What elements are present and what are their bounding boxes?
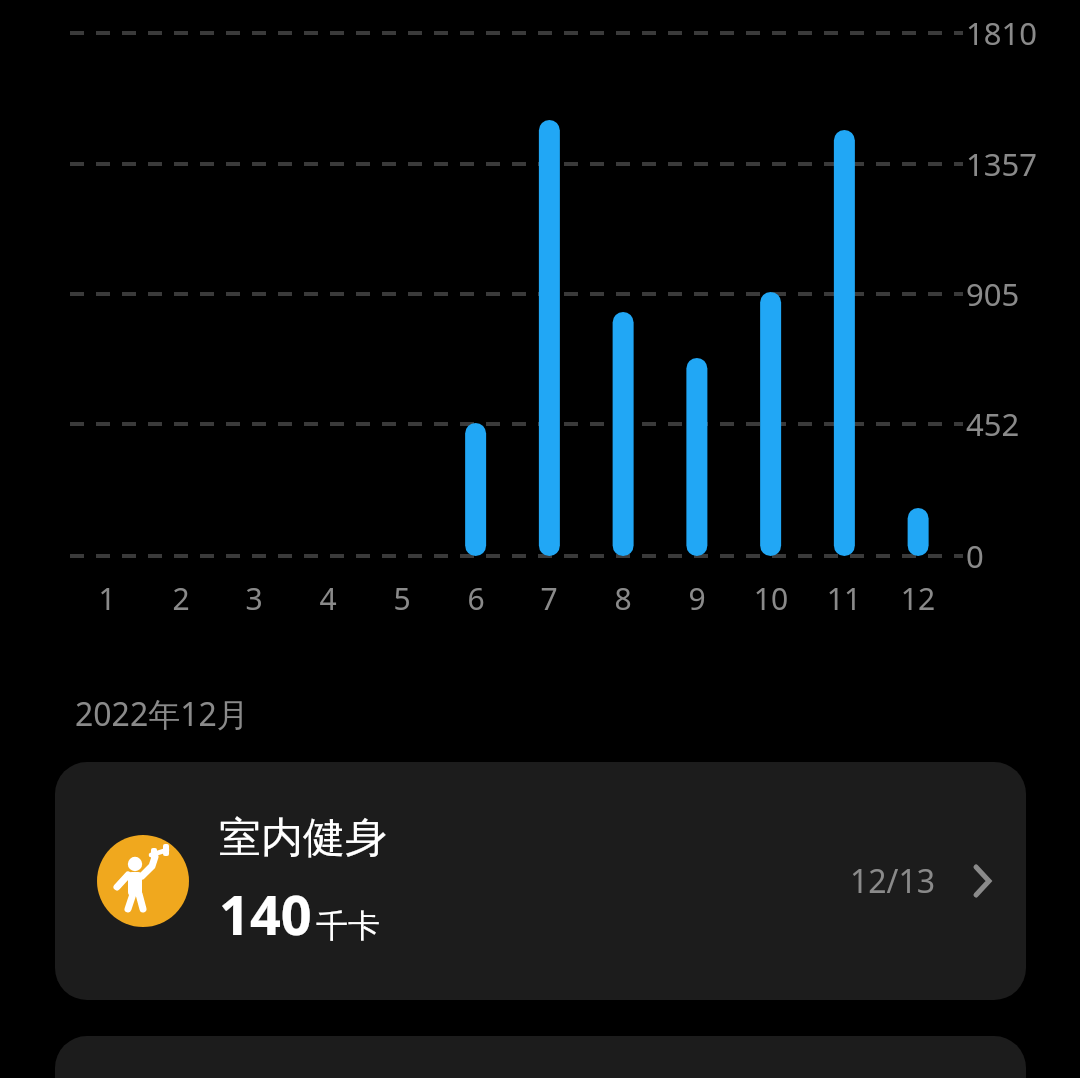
staticText: 12/13 [850,859,936,903]
staticText: 905 [966,273,1020,315]
staticText: 0 [966,535,984,577]
staticText: 9 [667,578,727,619]
staticText: 3 [224,578,284,619]
staticText: 5 [372,578,432,619]
staticText: 1357 [966,143,1037,185]
other: 查看详情 [962,861,1002,901]
staticText: 2 [151,578,211,619]
staticText: 8 [593,578,653,619]
staticText: 7 [519,578,579,619]
staticText: 1810 [966,12,1037,54]
staticText: 10 [741,578,801,619]
staticText: 2022年12月 [75,692,249,736]
staticText: 452 [966,403,1020,445]
button[interactable]: 室内健身 [55,762,1026,1000]
staticText: 140 [219,877,312,951]
staticText: 11 [814,578,874,619]
staticText: 1 [77,578,137,619]
staticText: 6 [446,578,506,619]
staticText: 4 [298,578,358,619]
staticText: 12 [888,578,948,619]
staticText: 千卡 [316,906,380,946]
staticText: 室内健身 [219,812,387,865]
